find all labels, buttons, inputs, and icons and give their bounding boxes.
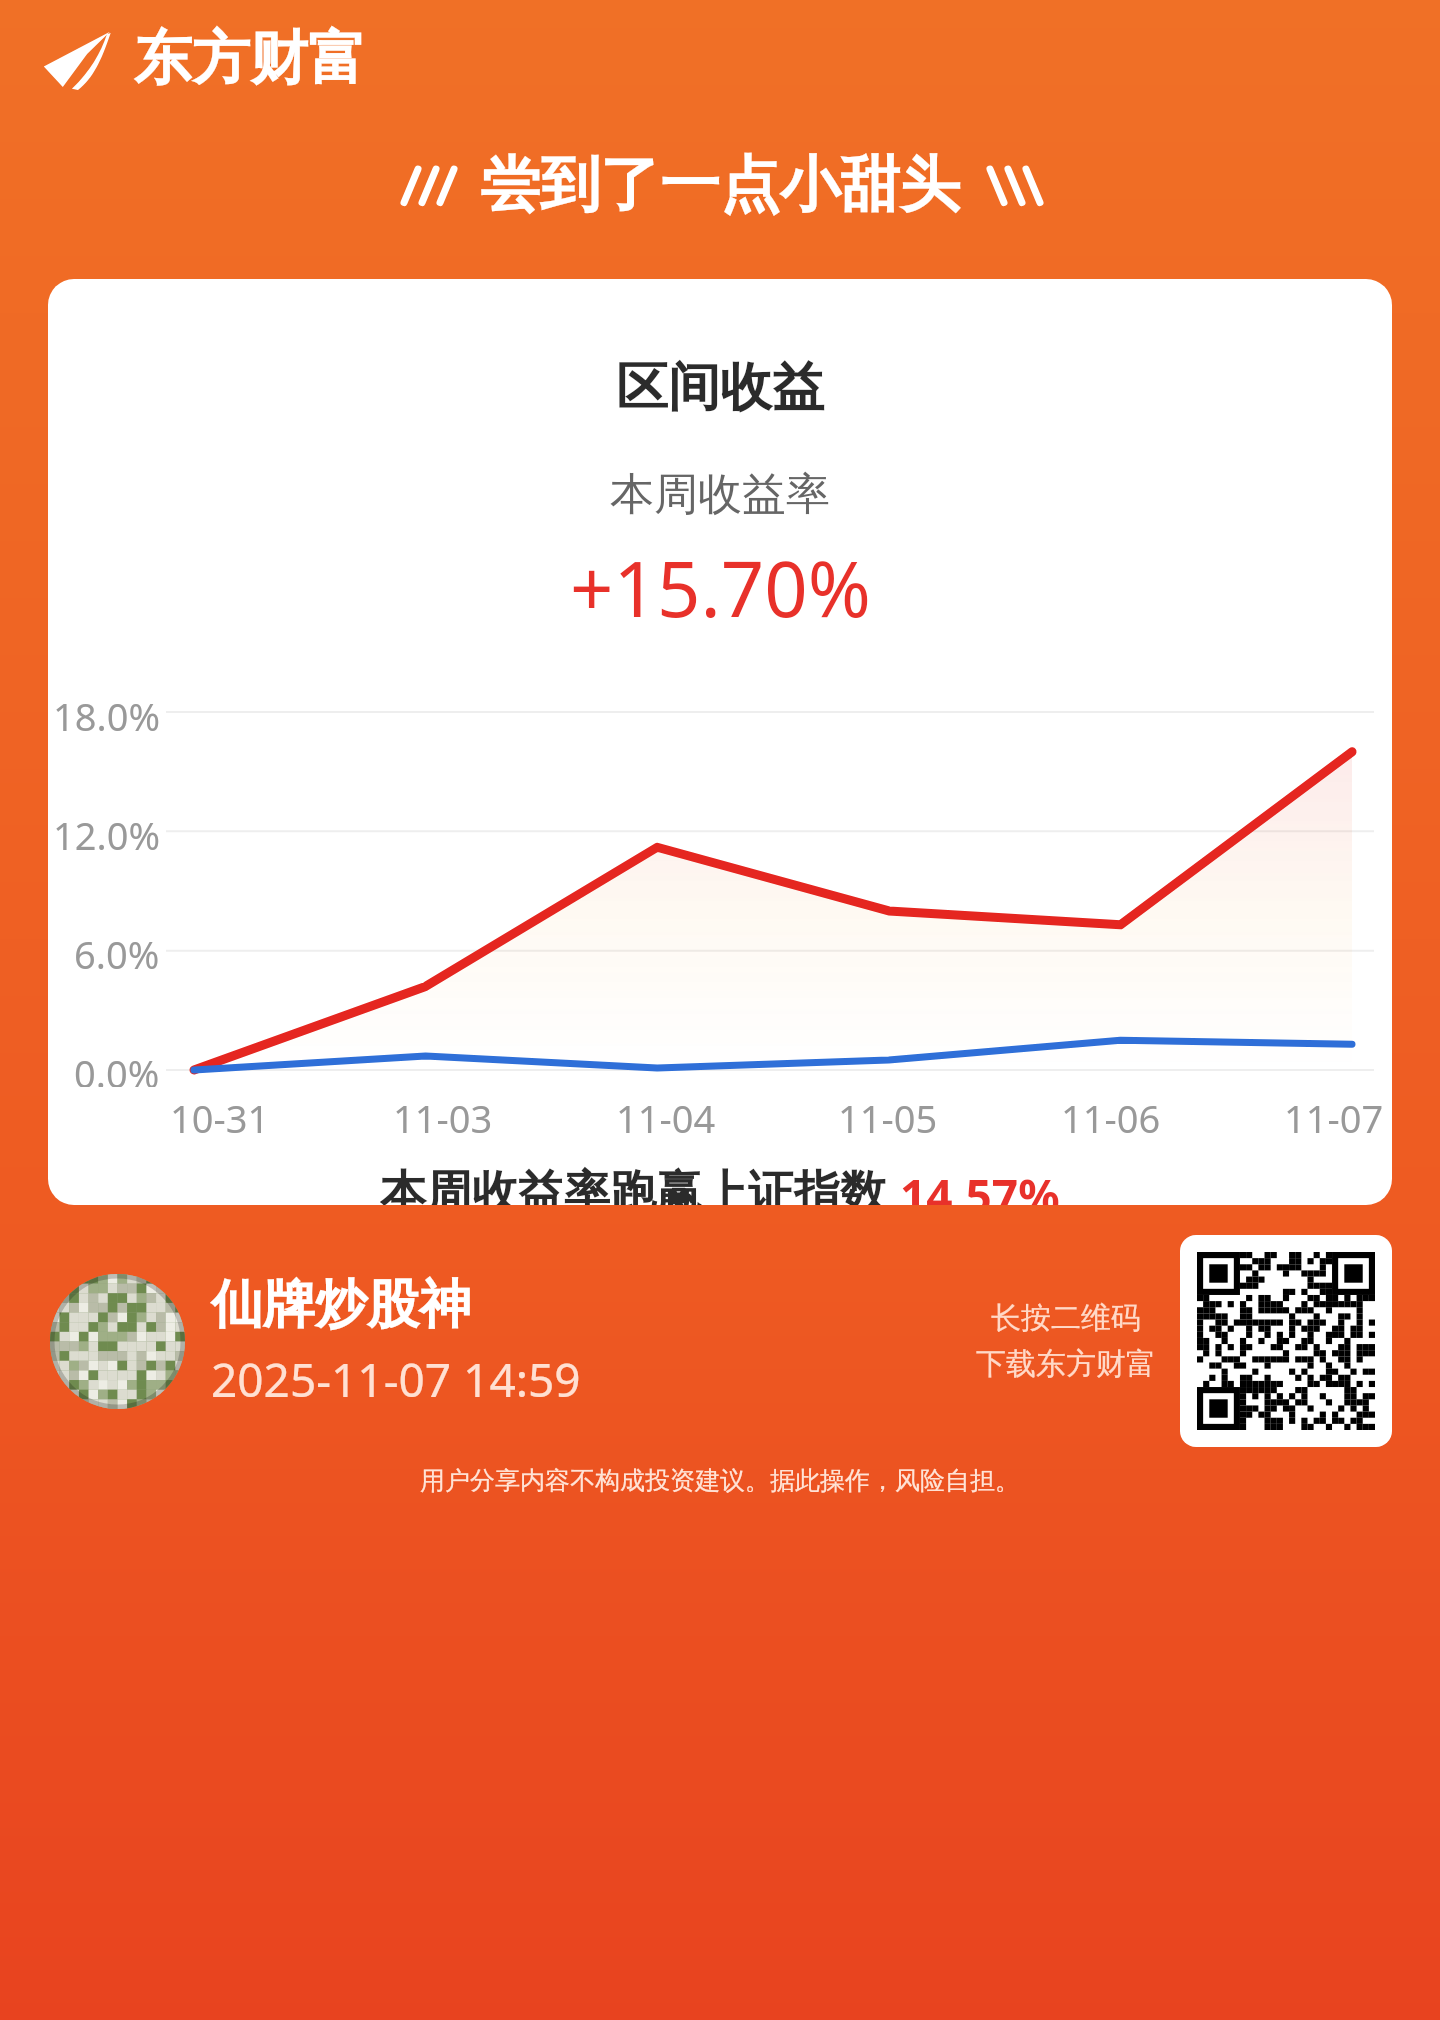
staticText: 0.0% [74,1047,160,1087]
button[interactable]: 二维码 [1180,1235,1392,1447]
staticText: 用户分享内容不构成投资建议。据此操作，风险自担。 [0,1465,1440,1496]
staticText: 本周收益率 [610,467,830,522]
staticText: 12.0% [53,809,160,861]
staticText: 14.57% [900,1164,1060,1205]
button[interactable]: 东方财富 logo [40,22,366,95]
staticText: 区间收益 [616,355,824,421]
staticText: 2025-11-07 14:59 [211,1348,581,1411]
staticText: 6.0% [74,928,160,980]
other: 东方财富 logo [40,28,116,90]
staticText: 18.0% [53,690,160,742]
button[interactable]: 区间收益 [48,279,1392,1205]
staticText: 11-06 [1061,1092,1161,1144]
staticText: 10-31 [170,1092,270,1144]
staticText: +15.70% [570,536,871,640]
staticText: 11-04 [616,1092,716,1144]
staticText: 11-07 [1284,1092,1384,1144]
staticText: 长按二维码 [991,1299,1141,1337]
staticText: 仙牌炒股神 [211,1272,471,1338]
staticText: 下载东方财富 [976,1345,1156,1383]
staticText: 东方财富 [134,22,366,95]
button[interactable]: 用户头像 [50,1274,185,1409]
staticText: 尝到了一点小甜头 [480,147,960,223]
staticText: 本周收益率跑赢上证指数 [380,1164,886,1205]
staticText: 11-03 [393,1092,493,1144]
staticText: 11-05 [838,1092,938,1144]
